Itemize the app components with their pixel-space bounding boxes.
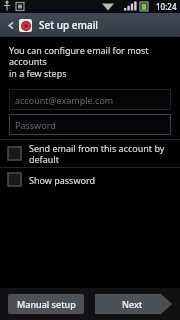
staticText: You can configure email for most account… bbox=[9, 44, 172, 80]
staticText: Password bbox=[15, 119, 56, 131]
staticText: Set up email bbox=[39, 18, 99, 32]
button[interactable]: Next bbox=[95, 294, 172, 314]
button[interactable]: Password bbox=[9, 114, 171, 135]
staticText: account@example.com bbox=[15, 94, 114, 106]
staticText: Manual setup bbox=[17, 298, 76, 310]
button[interactable]: account@example.com bbox=[9, 89, 171, 110]
staticText: Send email from this account by default bbox=[29, 142, 165, 165]
button[interactable]: Send email from this account by default bbox=[0, 140, 180, 167]
button[interactable]: Back bbox=[4, 18, 18, 32]
button[interactable]: Show password bbox=[0, 168, 180, 191]
staticText: Next bbox=[122, 298, 143, 310]
staticText: Show password bbox=[29, 174, 95, 186]
staticText: 10:24 bbox=[156, 1, 177, 12]
button[interactable]: Manual setup bbox=[8, 294, 84, 314]
